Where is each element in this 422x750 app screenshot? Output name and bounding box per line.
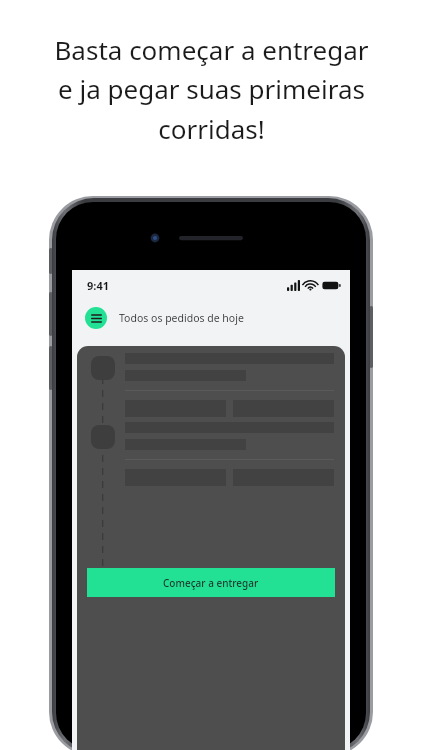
button[interactable]: Começar a entregar [87,568,335,597]
staticText: Todos os pedidos de hoje [119,311,244,325]
staticText: Basta começar a entregar e ja pegar suas… [54,32,369,147]
button[interactable]: Abrir menu [85,307,107,329]
staticText: 9:41 [87,278,109,293]
staticText: Começar a entregar [163,576,259,590]
